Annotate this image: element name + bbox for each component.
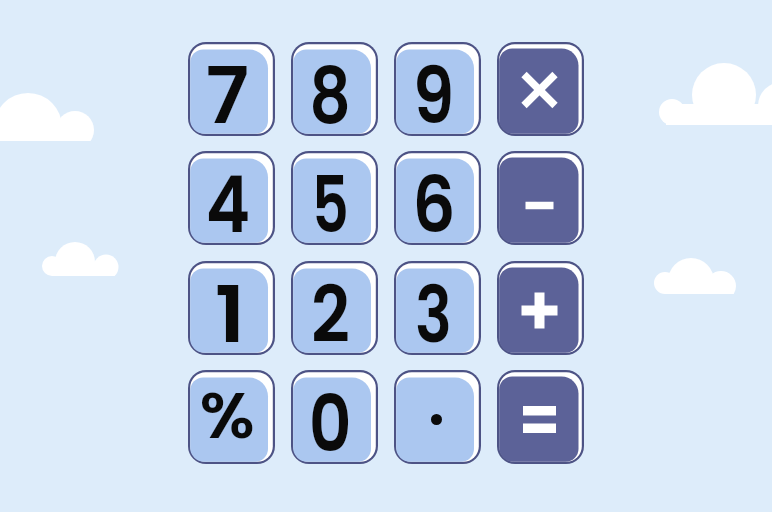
- staticText: 0: [309, 369, 352, 463]
- button[interactable]: 3: [394, 261, 481, 355]
- button[interactable]: 0: [291, 370, 378, 464]
- button[interactable]: [497, 42, 584, 136]
- button[interactable]: [394, 370, 481, 464]
- button[interactable]: 6: [394, 151, 481, 245]
- button[interactable]: 1: [188, 261, 275, 355]
- staticText: 2: [311, 260, 350, 354]
- button[interactable]: [497, 151, 584, 245]
- staticText: 7: [206, 41, 249, 135]
- staticText: 1: [215, 260, 246, 354]
- staticText: 4: [206, 150, 250, 244]
- button[interactable]: 4: [188, 151, 275, 245]
- button[interactable]: 8: [291, 42, 378, 136]
- staticText: 9: [413, 41, 454, 135]
- button[interactable]: %: [188, 370, 275, 464]
- staticText: 3: [415, 260, 452, 354]
- button[interactable]: [497, 370, 584, 464]
- staticText: 8: [309, 41, 352, 135]
- button[interactable]: [497, 261, 584, 355]
- staticText: %: [199, 372, 256, 460]
- button[interactable]: 9: [394, 42, 481, 136]
- staticText: 6: [412, 150, 456, 244]
- staticText: 5: [312, 150, 349, 244]
- button[interactable]: 7: [188, 42, 275, 136]
- button[interactable]: 5: [291, 151, 378, 245]
- button[interactable]: 2: [291, 261, 378, 355]
